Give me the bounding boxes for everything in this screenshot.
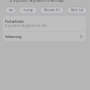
staticText: Port-vehicule (5, 20, 24, 23)
staticText: A gepkocsi megallosrendi arra (5, 24, 46, 27)
staticText: Ma (9, 8, 12, 12)
button[interactable]: Multi hal (67, 7, 87, 13)
staticText: Tegnap (23, 8, 33, 12)
staticText: A legutobbi megosztott elemek listaja (10, 0, 63, 3)
button[interactable]: Ma (5, 7, 16, 13)
staticText: Montant fel (44, 8, 60, 12)
staticText: Multi hal (71, 8, 83, 12)
button[interactable]: Montant fel (40, 7, 64, 13)
button[interactable]: Tegnap (19, 7, 37, 13)
staticText: Sebesseg (5, 34, 21, 39)
